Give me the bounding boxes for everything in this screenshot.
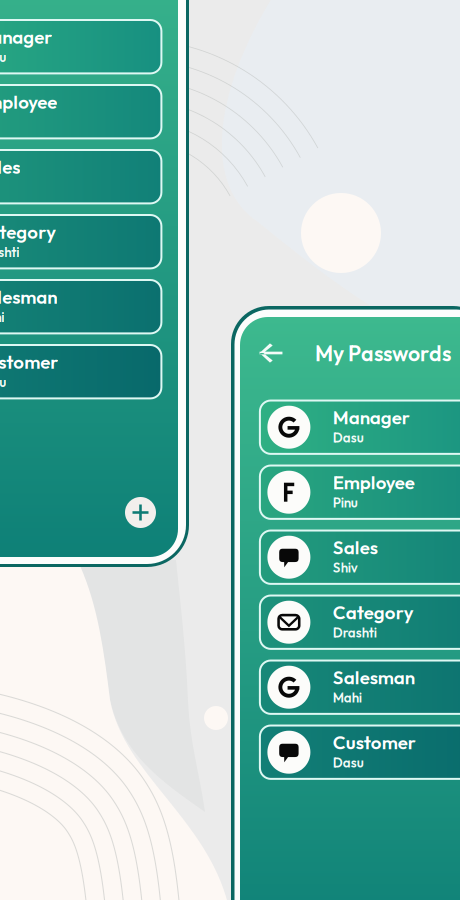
staticText: Salesman xyxy=(333,665,415,689)
staticText: Pinu xyxy=(333,494,358,511)
button[interactable]: Customer xyxy=(0,345,161,398)
staticText: Customer xyxy=(0,350,58,373)
staticText: Sales xyxy=(0,155,20,178)
button[interactable]: Manager xyxy=(260,400,460,454)
button[interactable]: Customer xyxy=(260,725,460,779)
button[interactable]: Category xyxy=(260,595,460,649)
staticText: Mahi xyxy=(333,689,362,706)
staticText: Manager xyxy=(0,25,52,48)
staticText: Manager xyxy=(333,405,410,429)
staticText: Dasu xyxy=(0,49,6,65)
staticText: Customer xyxy=(333,730,416,754)
staticText: Shiv xyxy=(333,559,358,576)
staticText: Employee xyxy=(0,90,57,113)
staticText: Category xyxy=(333,600,414,624)
staticText: Salesman xyxy=(0,285,57,308)
staticText: Category xyxy=(0,220,56,243)
button[interactable]: Add password xyxy=(125,497,156,528)
staticText: Drashti xyxy=(333,624,377,641)
staticText: Employee xyxy=(333,470,415,494)
staticText: Dasu xyxy=(0,374,6,390)
staticText: Sales xyxy=(333,535,378,559)
staticText: Drashti xyxy=(0,244,19,260)
staticText: Dasu xyxy=(333,754,364,771)
button[interactable]: Sales xyxy=(260,530,460,584)
button[interactable]: Salesman xyxy=(0,280,161,333)
button[interactable]: Sales xyxy=(0,150,161,203)
button[interactable]: Manager xyxy=(0,20,161,73)
staticText: Mahi xyxy=(0,309,4,325)
button[interactable]: Category xyxy=(0,215,161,268)
button[interactable]: Employee xyxy=(0,85,161,138)
button[interactable]: Salesman xyxy=(260,660,460,714)
button[interactable]: Back xyxy=(248,330,294,376)
button[interactable]: Employee xyxy=(260,465,460,519)
staticText: My Passwords xyxy=(315,340,451,367)
staticText: Dasu xyxy=(333,429,364,446)
